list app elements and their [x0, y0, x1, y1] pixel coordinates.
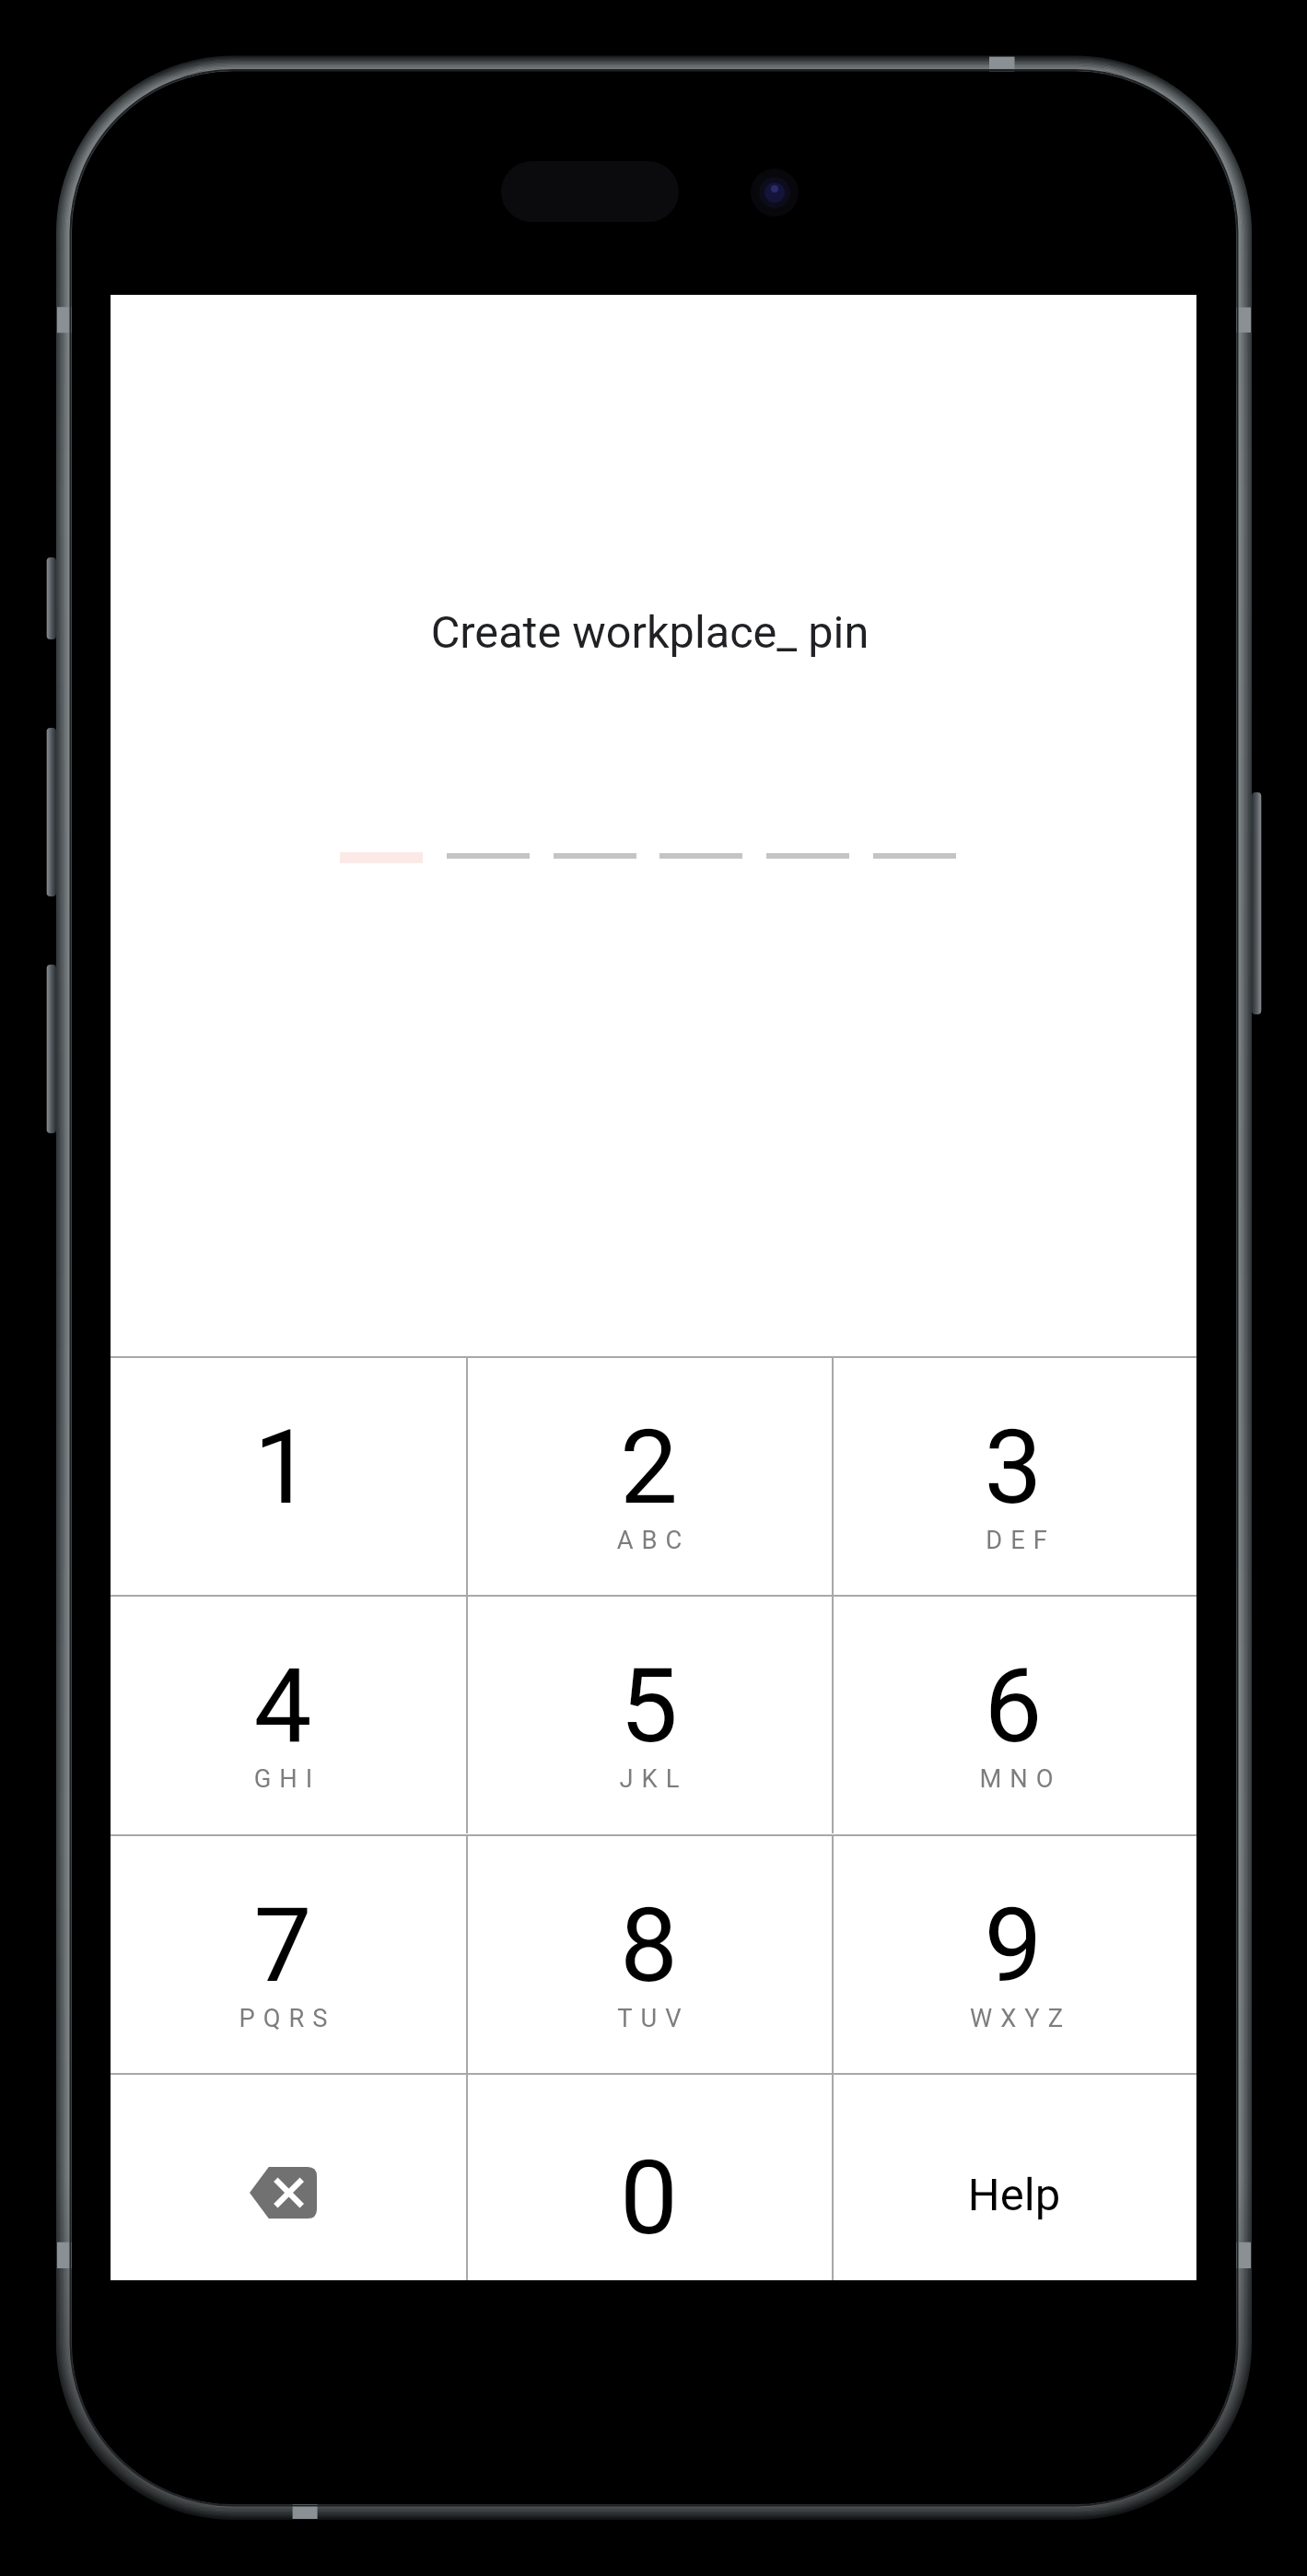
- staticText: 9: [831, 1885, 1196, 2006]
- button[interactable]: 6: [832, 1595, 1196, 1833]
- staticText: DEF: [838, 1526, 1196, 1555]
- button[interactable]: 7: [111, 1834, 466, 2073]
- button[interactable]: 3: [832, 1356, 1196, 1595]
- staticText: 7: [111, 1885, 461, 2006]
- button[interactable]: 5: [466, 1595, 832, 1833]
- staticText: WXYZ: [838, 2004, 1196, 2033]
- staticText: 0: [466, 2137, 832, 2258]
- button[interactable]: 8: [466, 1834, 832, 2073]
- staticText: 6: [831, 1645, 1196, 1766]
- button[interactable]: Help: [832, 2073, 1196, 2280]
- button[interactable]: 1: [111, 1356, 466, 1595]
- staticText: 2: [466, 1407, 832, 1528]
- staticText: GHI: [111, 1764, 465, 1794]
- staticText: PQRS: [111, 2004, 465, 2033]
- staticText: 4: [111, 1645, 461, 1766]
- staticText: MNO: [838, 1764, 1196, 1794]
- button[interactable]: Delete: [111, 2073, 466, 2280]
- staticText: 3: [831, 1407, 1196, 1528]
- staticText: TUV: [471, 2004, 836, 2033]
- staticText: ABC: [471, 1526, 836, 1555]
- staticText: 8: [466, 1885, 832, 2006]
- staticText: 5: [466, 1645, 832, 1766]
- staticText: JKL: [471, 1764, 836, 1794]
- staticText: Create workplace_ pin: [111, 606, 1193, 659]
- button[interactable]: 2: [466, 1356, 832, 1595]
- staticText: Help: [832, 2169, 1196, 2221]
- button[interactable]: 9: [832, 1834, 1196, 2073]
- staticText: 1: [111, 1407, 461, 1528]
- button[interactable]: 4: [111, 1595, 466, 1833]
- button[interactable]: 0: [466, 2073, 832, 2280]
